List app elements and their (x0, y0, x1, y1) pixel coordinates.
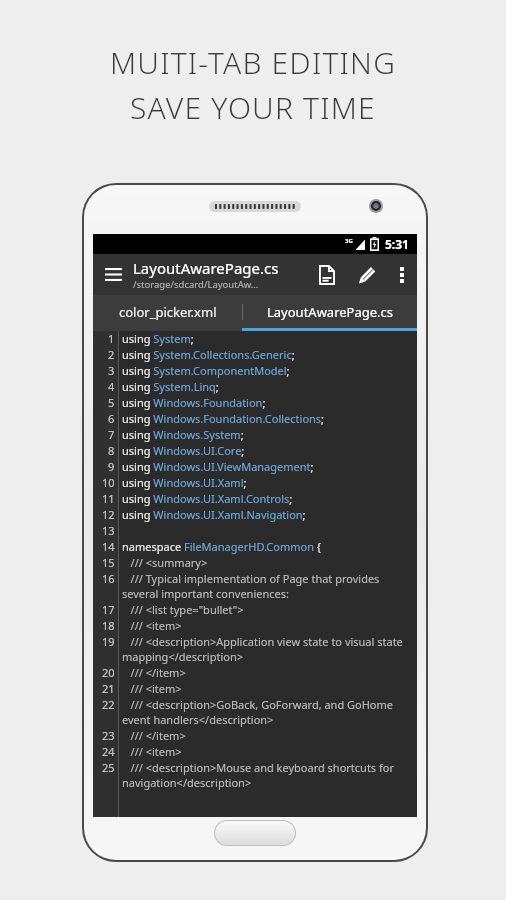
button[interactable]: Open navigation drawer (93, 254, 133, 295)
staticText: using System.Collections.Generic; (122, 347, 417, 362)
staticText: 1 (108, 331, 115, 346)
staticText: 4 (108, 379, 115, 394)
staticText: 22 (102, 697, 115, 712)
staticText: using System; (122, 331, 417, 346)
staticText: namespace FileManagerHD.Common { (122, 539, 417, 554)
staticText: 5 (108, 395, 115, 410)
staticText: MUITI-TAB EDITING (110, 42, 397, 83)
button[interactable]: More options (387, 254, 417, 295)
staticText: using Windows.Foundation.Collections; (122, 411, 417, 426)
staticText: 13 (102, 523, 115, 538)
staticText: using Windows.Foundation; (122, 395, 417, 410)
staticText: 6 (108, 411, 115, 426)
staticText: 8 (108, 443, 115, 458)
staticText: /// </item> (122, 728, 417, 743)
button[interactable]: Edit (347, 254, 387, 295)
staticText: /// <list type="bullet"> (122, 602, 417, 617)
staticText: using Windows.UI.Xaml.Controls; (122, 491, 417, 506)
staticText: /// <item> (122, 744, 417, 759)
staticText: SAVE YOUR TIME (130, 87, 376, 128)
staticText: using Windows.UI.Core; (122, 443, 417, 458)
staticText: 10 (102, 475, 115, 490)
staticText: 20 (102, 665, 115, 680)
staticText: /// <description>Application view state … (122, 634, 417, 664)
staticText: /// <item> (122, 618, 417, 633)
button[interactable]: LayoutAwarePage.cs (133, 254, 307, 295)
staticText: 23 (102, 728, 115, 743)
button[interactable]: Home (214, 820, 296, 846)
staticText: 25 (102, 760, 115, 775)
button[interactable]: LayoutAwarePage.cs (243, 295, 417, 328)
staticText: 12 (102, 507, 115, 522)
staticText: using Windows.UI.Xaml.Navigation; (122, 507, 417, 522)
button[interactable]: New file (307, 254, 347, 295)
staticText: LayoutAwarePage.cs (267, 303, 394, 321)
staticText: 21 (102, 681, 115, 696)
staticText: 9 (108, 459, 115, 474)
staticText: 19 (102, 634, 115, 649)
staticText: 2 (108, 347, 115, 362)
staticText: LayoutAwarePage.cs (133, 258, 279, 278)
staticText: 14 (102, 539, 115, 554)
staticText: 16 (102, 571, 115, 586)
staticText: /// </item> (122, 665, 417, 680)
staticText: using Windows.UI.Xaml; (122, 475, 417, 490)
staticText: /// <description>Mouse and keyboard shor… (122, 760, 417, 790)
button[interactable]: 1 (93, 331, 417, 817)
staticText: /// Typical implementation of Page that … (122, 571, 417, 601)
staticText: 5:31 (385, 236, 409, 252)
staticText: /// <summary> (122, 555, 417, 570)
staticText: 17 (102, 602, 115, 617)
staticText: 24 (102, 744, 115, 759)
staticText: using System.ComponentModel; (122, 363, 417, 378)
staticText: using System.Linq; (122, 379, 417, 394)
staticText: using Windows.UI.ViewManagement; (122, 459, 417, 474)
staticText: /// <description>GoBack, GoForward, and … (122, 697, 417, 727)
staticText: using Windows.System; (122, 427, 417, 442)
staticText: 3 (108, 363, 115, 378)
staticText: 7 (108, 427, 115, 442)
staticText: 15 (102, 555, 115, 570)
button[interactable]: color_picker.xml (93, 295, 242, 328)
staticText: /// <item> (122, 681, 417, 696)
staticText: 3G (345, 237, 353, 245)
staticText: 18 (102, 618, 115, 633)
staticText: 11 (102, 491, 115, 506)
staticText: color_picker.xml (119, 303, 217, 321)
staticText: /storage/sdcard/LayoutAw… (133, 278, 259, 291)
